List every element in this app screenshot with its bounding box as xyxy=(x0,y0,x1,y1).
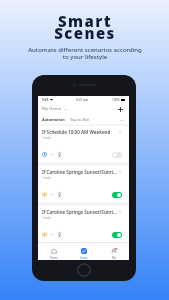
staticText: If Caroline Springs Sunset/Sunrise : S..… xyxy=(42,169,117,175)
button[interactable]: Enable scene xyxy=(112,192,122,198)
button[interactable]: Home xyxy=(38,247,69,260)
button[interactable]: Enable scene xyxy=(112,232,122,238)
button[interactable]: Enable scene xyxy=(112,152,122,158)
staticText: 1 tasks xyxy=(42,136,52,140)
staticText: Automation xyxy=(42,117,65,122)
button[interactable]: If Schedule 10:00 AM Weekend xyxy=(38,126,129,162)
staticText: Home xyxy=(50,256,58,260)
staticText: 1 tasks xyxy=(42,176,52,180)
button[interactable]: My Home xyxy=(42,106,67,112)
staticText: My Home xyxy=(42,106,62,112)
button[interactable]: Add scene xyxy=(116,105,125,114)
staticText: If Schedule 10:00 AM Weekend xyxy=(42,129,117,135)
button[interactable]: Tap-to-Run xyxy=(70,117,90,122)
button[interactable]: If Caroline Springs Sunset/Sunrise : S..… xyxy=(38,166,129,202)
staticText: Me xyxy=(112,256,117,260)
staticText: Smart Scenes xyxy=(54,11,116,44)
staticText: 9:41 xyxy=(42,98,49,102)
staticText: 1 tasks xyxy=(42,216,52,220)
button[interactable]: Me xyxy=(99,247,129,260)
button[interactable]: Automation xyxy=(42,117,65,122)
button[interactable]: If Caroline Springs Sunset/Sunrise : S..… xyxy=(38,206,129,242)
button[interactable]: More options xyxy=(119,117,125,123)
staticText: Scene xyxy=(80,256,88,260)
staticText: Automate different scenarios according t… xyxy=(28,46,142,61)
staticText: Tap-to-Run xyxy=(70,117,90,122)
staticText: 9:41 pm xyxy=(76,98,89,102)
button[interactable]: Scene xyxy=(69,247,99,260)
staticText: 100% xyxy=(112,98,120,102)
staticText: If Caroline Springs Sunset/Sunrise : S..… xyxy=(42,209,117,215)
